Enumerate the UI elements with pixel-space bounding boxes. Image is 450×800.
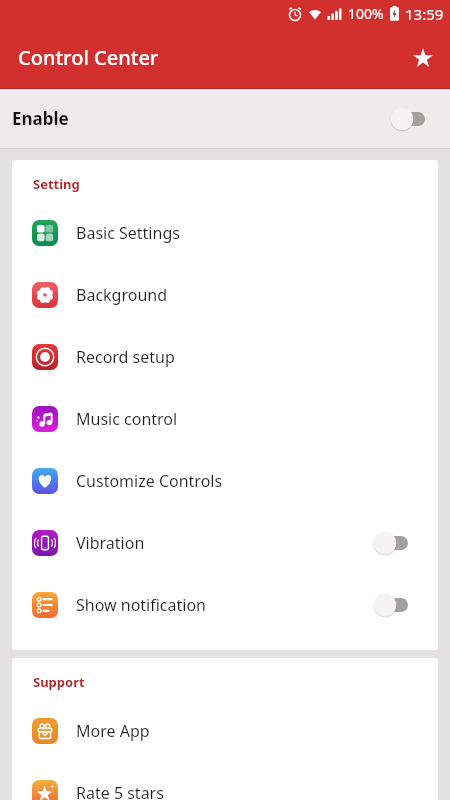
button[interactable]: Enable	[0, 89, 450, 148]
staticText: Control Center	[18, 44, 159, 71]
button[interactable]: Show notification	[12, 574, 438, 636]
button[interactable]: Record setup	[12, 326, 438, 388]
button[interactable]: More App	[12, 700, 438, 762]
staticText: Show notification	[76, 594, 207, 616]
staticText: 13:59	[405, 4, 444, 24]
button[interactable]: Background	[12, 264, 438, 326]
staticText: Basic Settings	[76, 222, 180, 244]
button[interactable]: Vibration	[12, 512, 438, 574]
staticText: Vibration	[76, 532, 145, 554]
staticText: Setting	[33, 175, 80, 193]
staticText: Customize Controls	[76, 470, 223, 492]
button[interactable]: Customize Controls	[12, 450, 438, 512]
staticText: Rate 5 stars	[76, 782, 164, 800]
button[interactable]	[401, 36, 445, 80]
staticText: Record setup	[76, 346, 175, 368]
button[interactable]	[390, 107, 425, 131]
staticText: Support	[33, 673, 85, 691]
staticText: Music control	[76, 408, 178, 430]
button[interactable]: Basic Settings	[12, 202, 438, 264]
staticText: More App	[76, 720, 150, 742]
staticText: Background	[76, 284, 168, 306]
button[interactable]	[373, 531, 408, 555]
staticText: Enable	[12, 107, 69, 130]
staticText: 100%	[348, 4, 384, 23]
button[interactable]: Rate 5 stars	[12, 762, 438, 800]
button[interactable]	[373, 593, 408, 617]
button[interactable]: Music control	[12, 388, 438, 450]
